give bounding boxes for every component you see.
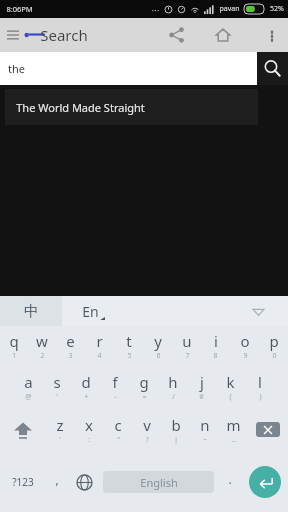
button[interactable]: s xyxy=(42,366,71,407)
button[interactable]: Shift xyxy=(0,407,45,452)
button[interactable]: 中 xyxy=(0,296,62,326)
staticText: 7 xyxy=(185,351,190,361)
staticText: 0 xyxy=(272,351,277,361)
staticText: | xyxy=(174,435,178,444)
staticText: , xyxy=(55,471,59,487)
staticText: w xyxy=(36,331,48,351)
button[interactable]: . xyxy=(218,452,242,512)
staticText: j xyxy=(200,372,204,392)
button[interactable]: x xyxy=(74,407,103,452)
button[interactable]: e xyxy=(56,326,85,366)
staticText: y xyxy=(154,331,162,351)
button[interactable]: Menu xyxy=(2,24,24,46)
button[interactable]: En xyxy=(62,296,124,326)
button[interactable]: t xyxy=(114,326,143,366)
staticText: e xyxy=(66,331,75,351)
staticText: 2 xyxy=(40,351,45,361)
button[interactable]: a xyxy=(14,366,42,407)
staticText: 3 xyxy=(68,351,73,361)
staticText: t xyxy=(126,331,132,351)
staticText: ?123 xyxy=(12,475,34,489)
staticText: @ xyxy=(25,392,32,402)
button[interactable]: Backspace xyxy=(248,407,288,452)
button[interactable]: v xyxy=(132,407,161,452)
staticText: 8:06PM xyxy=(6,4,33,14)
staticText: c xyxy=(114,415,122,435)
staticText: ( xyxy=(229,392,232,402)
staticText: Search xyxy=(40,25,88,45)
staticText: p xyxy=(269,331,279,351)
staticText: d xyxy=(81,372,91,392)
staticText: " xyxy=(117,435,120,444)
button[interactable]: b xyxy=(161,407,190,452)
button[interactable]: r xyxy=(85,326,114,366)
staticText: 中 xyxy=(24,302,39,321)
staticText: q xyxy=(9,331,19,351)
staticText: s xyxy=(53,372,61,392)
button[interactable]: n xyxy=(190,407,219,452)
button[interactable]: The World Made Straight xyxy=(5,89,258,125)
staticText: g xyxy=(139,372,149,392)
staticText: ' xyxy=(59,435,61,444)
button[interactable]: k xyxy=(216,366,245,407)
staticText: m xyxy=(226,415,241,435)
button[interactable]: z xyxy=(45,407,74,452)
button[interactable]: m xyxy=(219,407,248,452)
button[interactable]: c xyxy=(103,407,132,452)
button[interactable]: Home xyxy=(210,22,236,48)
button[interactable]: l xyxy=(245,366,274,407)
button[interactable]: Search xyxy=(257,52,288,85)
button[interactable]: j xyxy=(187,366,216,407)
staticText: 4 xyxy=(97,351,102,361)
staticText: 8 xyxy=(213,351,218,361)
staticText: 9 xyxy=(243,351,248,361)
staticText: l xyxy=(258,372,262,392)
staticText: En xyxy=(82,302,99,321)
staticText: + xyxy=(84,392,89,402)
button[interactable]: ?123 xyxy=(0,452,45,512)
button[interactable]: Enter xyxy=(242,452,288,512)
staticText: z xyxy=(56,415,64,435)
button[interactable]: g xyxy=(129,366,158,407)
staticText: ? xyxy=(146,435,149,444)
staticText: i xyxy=(214,331,218,351)
staticText: h xyxy=(168,372,178,392)
staticText: n xyxy=(200,415,210,435)
staticText: a xyxy=(24,372,33,392)
staticText: The World Made Straight xyxy=(16,100,145,115)
staticText: 1 xyxy=(12,351,17,361)
button[interactable]: h xyxy=(158,366,187,407)
staticText: # xyxy=(199,392,204,402)
staticText: English xyxy=(140,475,178,490)
button[interactable]: More options xyxy=(262,25,282,45)
button[interactable]: the xyxy=(0,52,257,85)
staticText: ~ xyxy=(203,435,207,444)
button[interactable]: Change language xyxy=(69,452,99,512)
button[interactable]: y xyxy=(143,326,172,366)
button[interactable]: w xyxy=(28,326,56,366)
staticText: : xyxy=(88,435,90,444)
button[interactable]: u xyxy=(172,326,201,366)
staticText: x xyxy=(85,415,93,435)
staticText: . xyxy=(228,471,232,487)
button[interactable]: i xyxy=(201,326,230,366)
button[interactable]: English xyxy=(103,471,214,493)
button[interactable]: d xyxy=(71,366,100,407)
staticText: 6 xyxy=(156,351,161,361)
staticText: = xyxy=(142,392,147,402)
staticText: r xyxy=(96,331,103,351)
staticText: k xyxy=(226,372,235,392)
staticText: pavan xyxy=(219,4,240,14)
button[interactable]: p xyxy=(259,326,288,366)
button[interactable]: , xyxy=(45,452,69,512)
button[interactable]: o xyxy=(230,326,259,366)
staticText: / xyxy=(172,392,175,402)
button[interactable]: q xyxy=(0,326,28,366)
staticText: ) xyxy=(259,392,262,402)
staticText: v xyxy=(143,415,151,435)
staticText: 52% xyxy=(270,4,284,14)
staticText: - xyxy=(114,392,117,402)
button[interactable]: Hide keyboard xyxy=(124,296,288,326)
button[interactable]: Share xyxy=(164,22,190,48)
button[interactable]: f xyxy=(100,366,129,407)
